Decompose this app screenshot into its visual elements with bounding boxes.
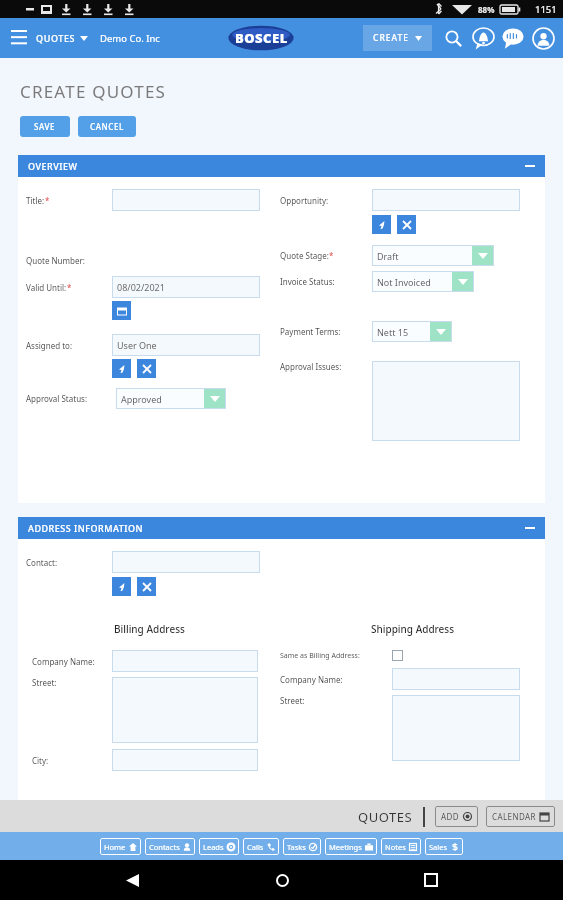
button[interactable]: QUOTES [34,32,90,44]
button[interactable]: ADD [435,806,478,827]
staticText: Approval Status: [26,393,88,404]
button[interactable]: Notes [381,838,421,855]
button[interactable]: Clear contact [137,577,156,596]
staticText: Contact: [26,557,58,568]
staticText: Quote Stage: [280,250,329,261]
staticText: Valid Until: [26,282,67,293]
button[interactable]: Sales [425,838,463,855]
staticText: * [67,282,72,293]
staticText: Calls [247,842,264,852]
staticText: Assigned to: [26,340,73,351]
staticText: Invoice Status: [280,276,335,287]
button[interactable]: ADDRESS INFORMATION [18,517,545,539]
button[interactable]: CALENDAR [486,806,555,827]
button[interactable]: Calls [243,838,279,855]
staticText: * [45,195,50,206]
button[interactable]: Profile [529,24,557,52]
button[interactable]: Select user [112,359,131,378]
button[interactable]: Pick date [112,301,131,320]
button[interactable]: Approved [116,388,226,409]
staticText: Shipping Address [371,622,455,636]
staticText: Quote Number: [26,255,85,266]
button[interactable]: Clear user [137,359,156,378]
staticText: 88% [478,4,495,15]
staticText: Nett 15 [377,326,430,338]
button[interactable]: SAVE [20,116,70,137]
button[interactable]: Menu [4,23,34,53]
staticText: * [329,250,334,261]
button[interactable]: Home [265,863,299,897]
staticText: Company Name: [280,674,343,685]
button[interactable]: Select contact [112,577,131,596]
button[interactable]: Meetings [325,838,377,855]
staticText: CREATE QUOTES [20,80,167,103]
staticText: User One [117,339,157,351]
staticText: CREATE [373,32,409,44]
button[interactable]: Draft [372,245,494,266]
staticText: Tasks [287,842,306,852]
staticText: Street: [280,695,305,706]
staticText: Not Invoiced [377,276,452,288]
staticText: SAVE [34,121,56,132]
staticText: Draft [377,250,472,262]
staticText: Meetings [329,842,362,852]
staticText: Title: [26,195,45,206]
staticText: Demo Co. Inc [100,32,160,45]
staticText: 08/02/2021 [117,281,165,293]
button[interactable]: Notifications [469,24,497,52]
button[interactable]: Back [115,863,149,897]
staticText: ADD [441,811,459,822]
staticText: Company Name: [32,656,95,667]
button[interactable]: Nett 15 [372,321,452,342]
staticText: Street: [32,677,57,688]
staticText: Billing Address [114,622,185,636]
button[interactable]: Clear opportunity [397,215,416,234]
staticText: City: [32,755,49,766]
staticText: QUOTES [358,808,413,826]
staticText: 1151 [535,3,557,16]
button[interactable]: Search [440,25,466,51]
button[interactable]: Select opportunity [372,215,391,234]
staticText: Same as Billing Address: [280,651,360,661]
button[interactable]: Messages [499,24,527,52]
button[interactable]: Recent apps [414,863,448,897]
button[interactable]: Not Invoiced [372,271,474,292]
staticText: Payment Terms: [280,326,341,337]
staticText: Leads [203,842,224,852]
button[interactable]: CANCEL [78,116,136,137]
staticText: BOSCEL [235,29,288,47]
staticText: ADDRESS INFORMATION [28,522,143,534]
button[interactable]: Leads [199,838,239,855]
staticText: Sales [429,842,448,852]
staticText: Notes [385,842,406,852]
staticText: Opportunity: [280,195,329,206]
staticText: Approved [121,393,204,405]
button[interactable]: CREATE [363,25,432,51]
staticText: OVERVIEW [28,160,78,172]
staticText: Approval Issues: [280,361,342,372]
staticText: QUOTES [36,32,76,44]
button[interactable]: Contacts [145,838,195,855]
staticText: Contacts [149,842,180,852]
button[interactable]: OVERVIEW [18,155,545,177]
staticText: CALENDAR [492,811,536,822]
button[interactable]: Same as Billing Address [392,650,403,661]
button[interactable]: Tasks [283,838,321,855]
staticText: Home [104,842,126,852]
button[interactable]: Home [100,838,141,855]
staticText: CANCEL [90,121,124,132]
